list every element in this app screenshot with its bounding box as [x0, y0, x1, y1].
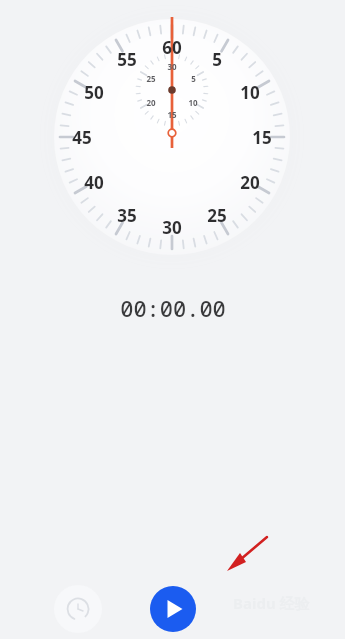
button[interactable]: Lap — [54, 585, 102, 633]
staticText: 20 — [146, 97, 156, 108]
staticText: 35 — [117, 204, 137, 227]
staticText: 50 — [84, 81, 104, 104]
staticText: 10 — [240, 81, 260, 104]
staticText: 30 — [162, 216, 182, 239]
staticText: 15 — [167, 109, 177, 120]
staticText: 60 — [162, 36, 182, 59]
staticText: 10 — [188, 97, 198, 108]
staticText: 25 — [146, 73, 156, 84]
staticText: 55 — [117, 48, 137, 71]
staticText: 20 — [240, 171, 260, 194]
staticText: 40 — [84, 171, 104, 194]
button[interactable]: Start — [150, 586, 196, 632]
staticText: 5 — [212, 48, 222, 71]
staticText: 5 — [191, 73, 196, 84]
staticText: 30 — [167, 61, 177, 72]
staticText: 15 — [252, 126, 272, 149]
staticText: 00:00.00 — [120, 293, 226, 321]
staticText: 25 — [207, 204, 227, 227]
staticText: 45 — [72, 126, 92, 149]
